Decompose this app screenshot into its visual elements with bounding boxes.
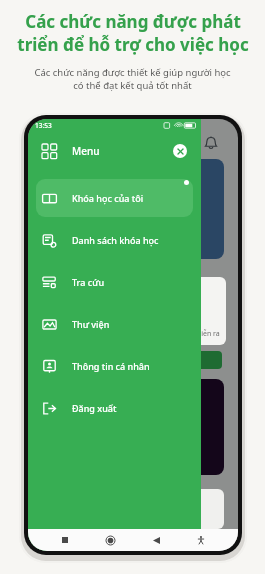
button[interactable]: Close menu xyxy=(173,144,187,158)
staticText: Tra cứu xyxy=(72,276,105,288)
staticText: Khóa học nổi bật đang diễn ra xyxy=(121,329,220,339)
staticText: Danh sách khóa học xyxy=(72,234,159,246)
staticText: Các chức năng được phát xyxy=(25,10,241,33)
staticText: triển để hỗ trợ cho việc học xyxy=(17,33,249,56)
button[interactable]: Đăng xuất xyxy=(36,389,193,427)
button[interactable]: Khóa học của tôi xyxy=(36,179,193,217)
button[interactable]: Menu grid xyxy=(42,144,57,159)
staticText: Thông tin cá nhân xyxy=(72,360,150,372)
button[interactable]: Tra cứu xyxy=(36,263,193,301)
button[interactable]: Thông tin cá nhân xyxy=(36,347,193,385)
button[interactable]: Accessibility xyxy=(193,532,209,548)
staticText: Khóa học của tôi xyxy=(72,192,144,204)
staticText: Các chức năng được thiết kế giúp người h… xyxy=(34,66,231,79)
button[interactable]: Notifications xyxy=(202,134,220,152)
button[interactable]: Recents xyxy=(57,532,73,548)
button[interactable]: Home xyxy=(102,532,118,548)
staticText: Thư viện xyxy=(72,318,110,330)
button[interactable]: Back xyxy=(148,532,164,548)
staticText: có thể đạt kết quả tốt nhất xyxy=(73,79,192,92)
staticText: 13:53 xyxy=(35,121,52,130)
staticText: Menu xyxy=(72,144,100,158)
button[interactable]: Danh sách khóa học xyxy=(36,221,193,259)
staticText: Đăng xuất xyxy=(72,402,117,414)
button[interactable]: Thư viện xyxy=(36,305,193,343)
